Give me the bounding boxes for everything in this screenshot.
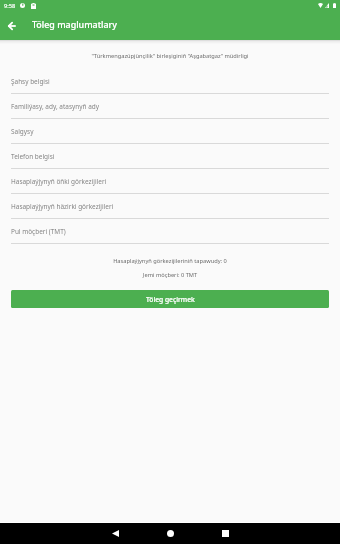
staticText: Salgysy — [11, 127, 34, 136]
button[interactable]: Recent apps — [198, 523, 253, 544]
staticText: Töleg maglumatlary — [32, 18, 117, 30]
staticText: Jemi möçberi: 0 TMT — [11, 271, 329, 279]
button[interactable]: Salgysy — [11, 119, 329, 144]
staticText: Pul möçberi (TMT) — [11, 227, 66, 236]
button[interactable]: Hasaplaýjynyň öňki görkezijileri — [11, 169, 329, 194]
staticText: Hasaplaýjynyň görkezijileriniň tapawudy:… — [11, 257, 329, 265]
staticText: Hasaplaýjynyň öňki görkezijileri — [11, 177, 107, 186]
staticText: 9:58 — [4, 2, 16, 10]
button[interactable]: Home — [143, 523, 198, 544]
staticText: Familiýasy, ady, atasynyň ady — [11, 102, 100, 111]
staticText: Hasaplaýjynyň häzirki görkezijileri — [11, 202, 114, 211]
staticText: Telefon belgisi — [11, 152, 55, 161]
button[interactable]: Şahsy belgisi — [11, 69, 329, 94]
button[interactable]: Familiýasy, ady, atasynyň ady — [11, 94, 329, 119]
staticText: Töleg geçirmek — [146, 295, 195, 304]
button[interactable]: Hasaplaýjynyň häzirki görkezijileri — [11, 194, 329, 219]
button[interactable]: Back — [0, 14, 24, 38]
button[interactable]: Telefon belgisi — [11, 144, 329, 169]
staticText: Şahsy belgisi — [11, 77, 50, 86]
button[interactable]: Back — [88, 523, 143, 544]
staticText: "Türkmengazüpjünçilik" birleşiginiň "Aşg… — [11, 52, 329, 60]
button[interactable]: Töleg geçirmek — [11, 290, 329, 308]
button[interactable]: Pul möçberi (TMT) — [11, 219, 329, 244]
